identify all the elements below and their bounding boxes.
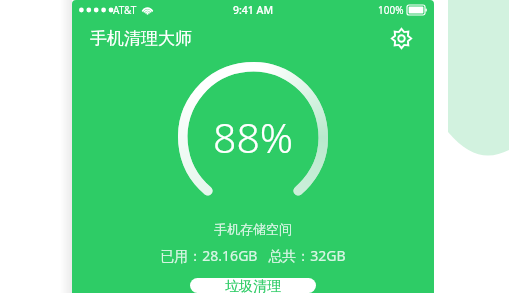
staticText: 9:41 AM	[233, 3, 274, 17]
staticText: 手机存储空间	[214, 221, 292, 237]
staticText: 已用：28.16GB 总共：32GB	[160, 246, 346, 265]
button[interactable]: 垃圾清理	[190, 278, 316, 293]
staticText: AT&T	[113, 3, 137, 17]
button[interactable]: Settings	[388, 25, 414, 51]
staticText: 垃圾清理	[225, 278, 281, 293]
staticText: 100%	[378, 3, 404, 17]
staticText: 88%	[213, 109, 294, 165]
staticText: 手机清理大师	[90, 28, 192, 49]
